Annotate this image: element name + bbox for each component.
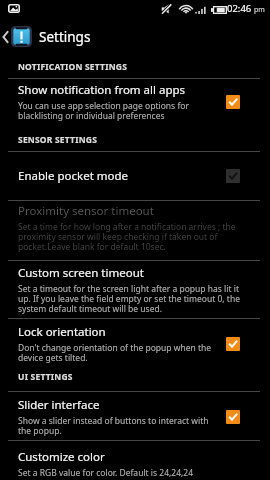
staticText: You can use app selection page options f… xyxy=(18,100,212,122)
staticText: Set a timeout for the screen light after… xyxy=(18,283,250,315)
staticText: SENSOR SETTINGS xyxy=(18,134,98,146)
button[interactable]: Custom screen timeout xyxy=(0,261,270,318)
staticText: NOTIFICATION SETTINGS xyxy=(18,61,128,73)
staticText: UI SETTINGS xyxy=(18,371,73,383)
button[interactable]: Enable pocket mode xyxy=(0,152,270,200)
button[interactable]: Slider interface xyxy=(0,392,270,440)
staticText: Set a RGB value for color. Default is 24… xyxy=(18,467,194,479)
staticText: Proximity sensor timeout xyxy=(18,203,154,219)
button[interactable]: Customize color xyxy=(0,441,270,479)
staticText: Show a slider instead of buttons to inte… xyxy=(18,415,212,437)
button[interactable]: Navigate up xyxy=(0,21,11,52)
button[interactable]: Show notification from all apps xyxy=(0,79,270,129)
button[interactable]: Proximity sensor timeout xyxy=(0,201,270,260)
staticText: Don't change orientation of the popup wh… xyxy=(18,342,212,364)
staticText: Settings xyxy=(39,28,91,46)
staticText: 02:46 xyxy=(227,2,252,15)
staticText: pm xyxy=(254,5,265,15)
staticText: Custom screen timeout xyxy=(18,265,144,281)
staticText: Enable pocket mode xyxy=(18,168,129,184)
staticText: Show notification from all apps xyxy=(18,82,186,98)
staticText: Lock orientation xyxy=(18,324,106,340)
button[interactable]: Lock orientation xyxy=(0,319,270,369)
staticText: Customize color xyxy=(18,449,105,465)
staticText: Slider interface xyxy=(18,397,100,413)
staticText: Set a time for how long after a notifica… xyxy=(18,221,250,253)
